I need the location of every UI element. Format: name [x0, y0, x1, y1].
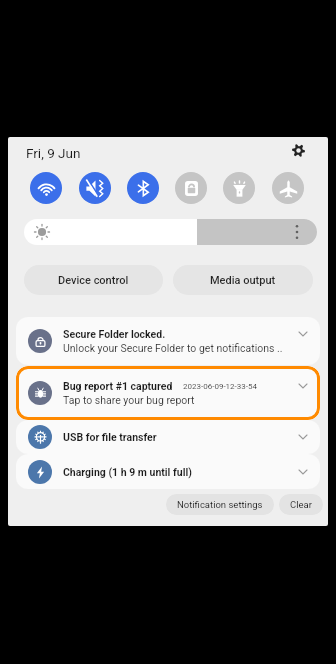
button[interactable]: Airplane mode: [272, 172, 304, 204]
staticText: USB for file transfer: [63, 431, 157, 443]
button[interactable]: Bug report #1 captured: [16, 366, 320, 420]
staticText: Media output: [210, 274, 276, 287]
button[interactable]: Settings: [286, 138, 310, 162]
staticText: Device control: [58, 274, 129, 287]
staticText: Charging (1 h 9 m until full): [63, 466, 192, 478]
staticText: Unlock your Secure Folder to get notific…: [63, 342, 283, 354]
button[interactable]: Secure Folder: [175, 172, 207, 204]
button[interactable]: Flashlight: [223, 172, 255, 204]
button[interactable]: Mute: [79, 172, 111, 204]
button[interactable]: USB for file transfer: [16, 420, 320, 454]
button[interactable]: Media output: [173, 265, 313, 295]
button[interactable]: Secure Folder locked.: [16, 317, 320, 365]
button[interactable]: Bluetooth: [127, 172, 159, 204]
staticText: Tap to share your bug report: [63, 394, 195, 406]
button[interactable]: Wi-Fi: [30, 172, 62, 204]
staticText: Fri, 9 Jun: [26, 145, 81, 161]
staticText: Secure Folder locked.: [63, 328, 166, 340]
staticText: Notification settings: [177, 499, 263, 510]
staticText: Clear: [290, 499, 312, 510]
staticText: 2023-06-09-12-33-54: [183, 382, 257, 391]
button[interactable]: Brightness: [24, 219, 317, 245]
staticText: Bug report #1 captured: [63, 380, 173, 392]
button[interactable]: Charging (1 h 9 m until full): [16, 454, 320, 489]
button[interactable]: Device control: [24, 265, 163, 295]
button[interactable]: Notification settings: [166, 494, 274, 515]
button[interactable]: Clear: [279, 494, 323, 515]
